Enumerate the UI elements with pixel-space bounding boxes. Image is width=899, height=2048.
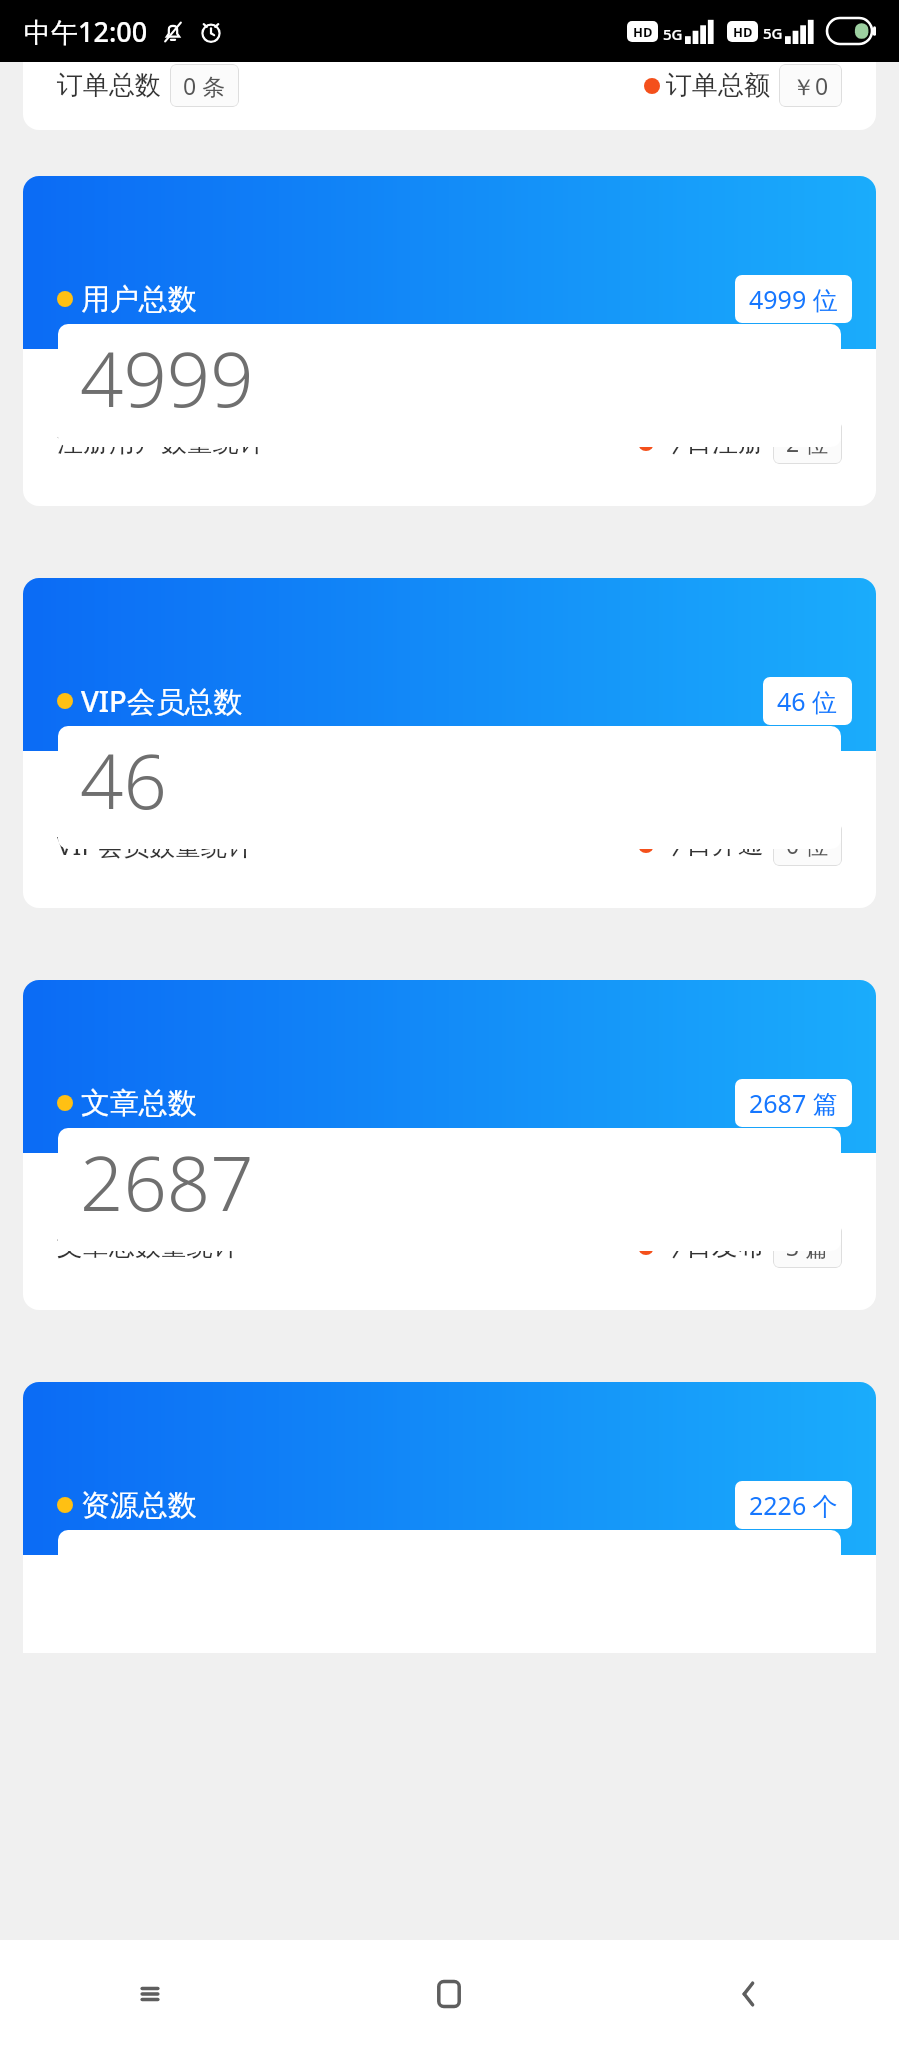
staticText: 5G [763, 23, 783, 43]
button[interactable]: VIP会员总数 [23, 578, 876, 908]
button[interactable]: 2687 篇 [735, 1079, 852, 1127]
staticText: 2226 个 [749, 1488, 838, 1522]
staticText: 今日发布 [660, 1230, 764, 1263]
staticText: 文章总数 [81, 1085, 197, 1122]
staticText: ￥0 [792, 70, 829, 101]
button[interactable]: 订单总数 [23, 62, 876, 130]
staticText: HD [733, 23, 753, 41]
button[interactable]: ￥0 [779, 64, 842, 107]
staticText: 2687 篇 [749, 1086, 838, 1120]
staticText: 4999 位 [749, 282, 838, 316]
button[interactable]: 46 位 [763, 677, 852, 725]
staticText: 3 篇 [786, 1231, 829, 1262]
button[interactable]: 0 条 [170, 64, 239, 107]
staticText: 0 位 [786, 829, 829, 860]
button[interactable]: 2 位 [773, 421, 842, 464]
staticText: 注册用户数量统计 [57, 426, 265, 459]
staticText: 订单总额 [666, 69, 770, 102]
button[interactable]: Recent apps [0, 1940, 299, 2048]
button[interactable]: 3 篇 [773, 1225, 842, 1268]
staticText: HD [633, 23, 653, 41]
button[interactable]: Back [599, 1940, 899, 2048]
staticText: 2 位 [786, 427, 829, 458]
button[interactable]: 0 位 [773, 823, 842, 866]
button[interactable]: 用户总数 [23, 176, 876, 506]
staticText: 文章总数量统计 [57, 1230, 239, 1263]
staticText: 中午12:00 [24, 13, 148, 50]
staticText: 5G [663, 24, 683, 44]
staticText: VIP会员数量统计 [57, 827, 254, 863]
staticText: 订单总数 [57, 69, 161, 102]
button[interactable]: 资源总数 [23, 1382, 876, 1653]
button[interactable]: 2226 个 [735, 1481, 852, 1529]
staticText: 资源总数 [81, 1487, 197, 1524]
staticText: 4999 [80, 326, 254, 430]
staticText: 2687 [80, 1130, 254, 1234]
staticText: 46 [80, 728, 167, 832]
staticText: 今日开通 [660, 828, 764, 861]
button[interactable]: 文章总数 [23, 980, 876, 1310]
staticText: 46 位 [777, 684, 838, 718]
staticText: 0 条 [183, 70, 226, 101]
staticText: VIP会员总数 [81, 681, 243, 721]
button[interactable]: Home [299, 1940, 599, 2048]
staticText: 今日注册 [660, 426, 764, 459]
button[interactable]: 4999 位 [735, 275, 852, 323]
staticText: 用户总数 [81, 281, 197, 318]
